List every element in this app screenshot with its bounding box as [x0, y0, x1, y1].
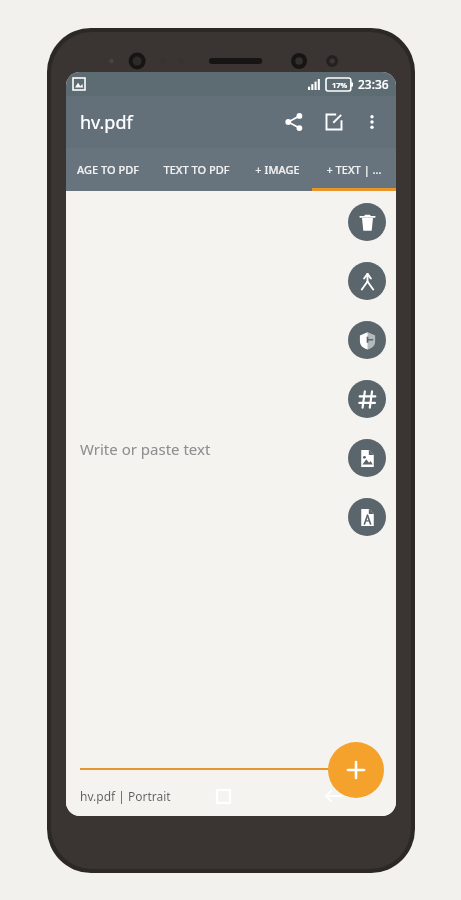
button[interactable]: Page numbers [348, 380, 386, 418]
staticText: 17% [332, 80, 348, 90]
staticText: Write or paste text [80, 439, 211, 459]
button[interactable]: Protect [348, 321, 386, 359]
button[interactable]: TEXT TO PDF [150, 148, 242, 191]
button[interactable]: Image to PDF [348, 439, 386, 477]
staticText: 23:36 [358, 76, 389, 92]
button[interactable]: Recents [208, 781, 238, 811]
button[interactable]: Share [274, 102, 314, 142]
button[interactable]: + TEXT | ... [312, 148, 396, 191]
staticText: AGE TO PDF [77, 162, 139, 177]
button[interactable]: AGE TO PDF [66, 148, 150, 191]
staticText: hv.pdf [80, 110, 133, 135]
staticText: + IMAGE [255, 162, 300, 177]
button[interactable]: + IMAGE [242, 148, 312, 191]
button[interactable]: More options [354, 104, 390, 140]
button[interactable]: PDF file [348, 498, 386, 536]
staticText: TEXT TO PDF [163, 162, 230, 177]
button[interactable]: Open externally [314, 102, 354, 142]
button[interactable]: Delete [348, 203, 386, 241]
button[interactable]: Back [318, 781, 348, 811]
staticText: + TEXT | ... [326, 162, 382, 177]
button[interactable]: Add [328, 742, 384, 798]
button[interactable]: Merge [348, 262, 386, 300]
staticText: hv.pdf | Portrait [80, 788, 171, 804]
